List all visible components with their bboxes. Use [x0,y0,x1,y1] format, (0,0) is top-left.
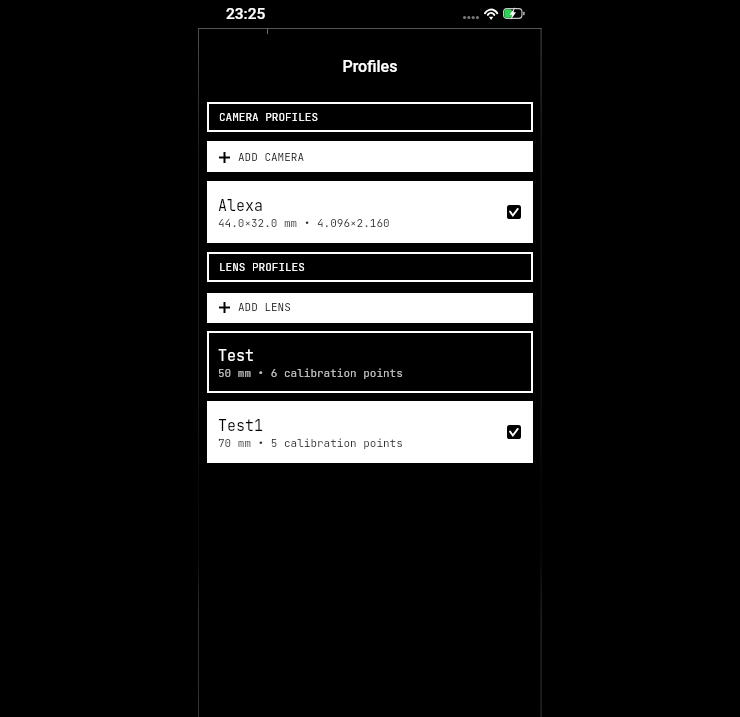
staticText: Profiles [207,57,533,76]
staticText: LENS PROFILES [219,260,305,275]
staticText: ADD LENS [238,300,291,315]
staticText: Alexa [218,196,264,216]
button[interactable]: ADD CAMERA [207,141,533,172]
button[interactable]: CAMERA PROFILES [207,102,533,132]
staticText: 44.0×32.0 mm • 4.096×2.160 [218,216,390,231]
other: Selected [507,205,521,219]
staticText: CAMERA PROFILES [219,110,318,125]
button[interactable]: Test1 [207,401,533,463]
button[interactable]: Test [207,331,533,393]
other: Selected [507,425,521,439]
staticText: Test1 [218,416,264,436]
staticText: Test [218,346,255,366]
staticText: 70 mm • 5 calibration points [218,436,403,451]
button[interactable]: ADD LENS [207,293,533,323]
staticText: 23:25 [226,5,266,23]
staticText: ADD CAMERA [238,150,304,165]
staticText: 50 mm • 6 calibration points [218,366,403,381]
button[interactable]: LENS PROFILES [207,252,533,282]
button[interactable]: Alexa [207,181,533,243]
